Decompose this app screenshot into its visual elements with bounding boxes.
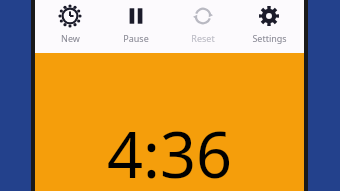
staticText: Settings: [252, 32, 287, 44]
staticText: New: [61, 32, 80, 44]
button[interactable]: New: [39, 0, 101, 53]
staticText: Reset: [191, 32, 215, 44]
button[interactable]: Settings: [238, 0, 300, 53]
staticText: 4:36: [107, 111, 232, 191]
button[interactable]: Reset: [172, 0, 234, 53]
button[interactable]: Pause: [105, 0, 167, 53]
staticText: Pause: [123, 32, 149, 44]
